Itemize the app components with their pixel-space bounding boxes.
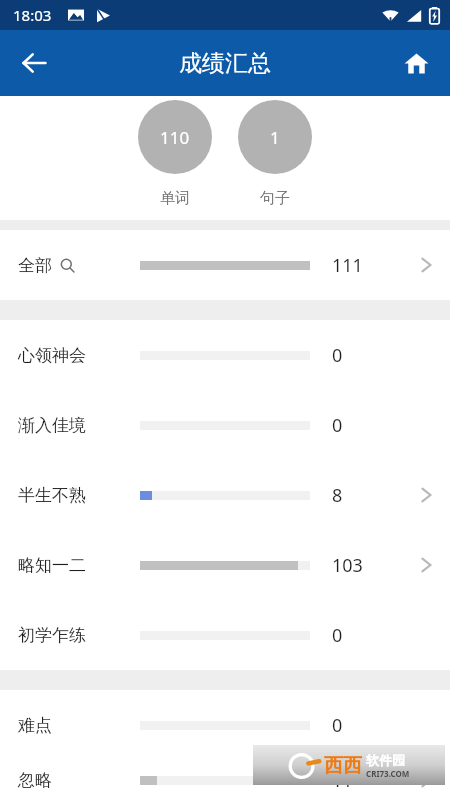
staticText: 110 [160,126,190,149]
staticText: 句子 [260,189,290,208]
staticText: 半生不熟 [18,485,86,506]
staticText: 难点 [18,715,52,736]
staticText: 全部 [18,255,52,276]
staticText: 8 [332,483,343,508]
staticText: 西西 [324,754,362,778]
button[interactable]: 半生不熟 [0,460,450,530]
button[interactable]: 忽略 [0,760,450,800]
button[interactable]: Back [10,39,58,87]
staticText: 1 [270,126,280,149]
staticText: 初学乍练 [18,625,86,646]
staticText: 0 [332,413,343,438]
button[interactable]: Home [392,39,440,87]
staticText: 略知一二 [18,555,86,576]
button[interactable]: 1 [238,100,312,174]
button[interactable]: 初学乍练 [0,600,450,670]
staticText: 0 [332,623,343,648]
staticText: CRI73.COM [366,768,410,779]
staticText: 成绩汇总 [179,49,271,78]
staticText: 18:03 [13,5,52,25]
staticText: 0 [332,343,343,368]
button[interactable]: 略知一二 [0,530,450,600]
staticText: 11 [332,768,353,793]
staticText: 忽略 [18,770,52,791]
staticText: 渐入佳境 [18,415,86,436]
button[interactable]: 渐入佳境 [0,390,450,460]
button[interactable]: 难点 [0,690,450,760]
staticText: 0 [332,713,343,738]
button[interactable]: 全部 [0,230,450,300]
button[interactable]: 110 [138,100,212,174]
staticText: 103 [332,553,363,578]
button[interactable]: 心领神会 [0,320,450,390]
staticText: 111 [332,253,363,278]
staticText: 心领神会 [18,345,86,366]
staticText: 单词 [160,189,190,208]
staticText: 软件园 [366,752,405,768]
